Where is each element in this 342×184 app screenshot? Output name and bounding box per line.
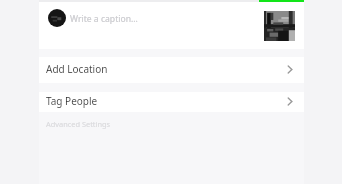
- button[interactable]: Add Location: [39, 57, 304, 83]
- button[interactable]: Selected photo: [264, 11, 295, 41]
- staticText: Tag People: [46, 94, 98, 108]
- button[interactable]: Write a caption...: [39, 2, 304, 49]
- staticText: Add Location: [46, 62, 108, 76]
- staticText: Write a caption...: [70, 13, 138, 25]
- button[interactable]: Tag People: [39, 92, 304, 112]
- staticText: Advanced Settings: [46, 119, 111, 129]
